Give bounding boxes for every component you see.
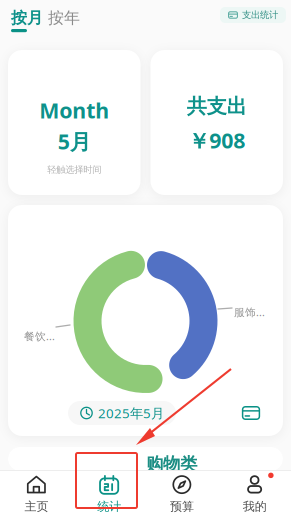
staticText: 按月	[11, 8, 43, 28]
button[interactable]: 支出统计	[220, 7, 286, 23]
button[interactable]: 统计	[73, 470, 146, 518]
staticText: 轻触选择时间	[47, 164, 101, 175]
button[interactable]: Month	[8, 50, 140, 195]
staticText: 2025年5月	[98, 404, 164, 422]
button[interactable]: 按月	[11, 9, 45, 32]
staticText: ￥908	[188, 126, 245, 154]
button[interactable]: 我的	[218, 470, 291, 518]
button[interactable]: 预算	[145, 470, 218, 518]
button[interactable]: 2025年5月	[68, 401, 176, 425]
staticText: 按年	[48, 8, 80, 28]
staticText: 5月	[58, 127, 91, 155]
staticText: 统计	[97, 499, 121, 514]
staticText: 主页	[24, 499, 48, 514]
staticText: 支出统计	[242, 9, 278, 21]
staticText: Month	[39, 96, 109, 124]
staticText: 购物类	[146, 453, 197, 475]
staticText: 服饰...	[234, 305, 265, 319]
staticText: 预算	[170, 499, 194, 514]
button[interactable]: 按年	[48, 9, 82, 27]
staticText: 共支出	[187, 94, 247, 119]
button[interactable]: Accounts	[236, 398, 266, 428]
staticText: 餐饮...	[24, 329, 55, 343]
staticText: 我的	[243, 499, 267, 514]
button[interactable]: 主页	[0, 470, 73, 518]
button[interactable]: 共支出	[150, 50, 283, 195]
